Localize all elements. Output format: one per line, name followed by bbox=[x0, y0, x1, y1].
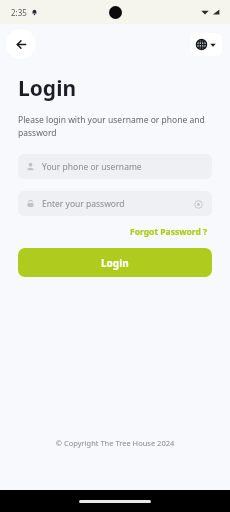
button[interactable]: Show password bbox=[192, 198, 204, 210]
button[interactable]: Forgot Password ? bbox=[127, 224, 211, 240]
staticText: Login bbox=[101, 256, 129, 270]
staticText: 2:35 bbox=[11, 7, 27, 18]
button[interactable]: Change language bbox=[190, 33, 222, 56]
button[interactable]: Login bbox=[18, 248, 212, 277]
button[interactable]: Enter your password bbox=[18, 191, 212, 216]
staticText: Forgot Password ? bbox=[130, 226, 208, 238]
staticText: © Copyright The Tree House 2024 bbox=[0, 438, 230, 448]
button[interactable]: Back bbox=[6, 29, 36, 59]
staticText: Your phone or username bbox=[42, 161, 204, 173]
staticText: Please login with your username or phone… bbox=[18, 114, 210, 139]
button[interactable]: Your phone or username bbox=[18, 154, 212, 179]
staticText: Enter your password bbox=[42, 198, 192, 210]
staticText: Login bbox=[18, 74, 77, 103]
